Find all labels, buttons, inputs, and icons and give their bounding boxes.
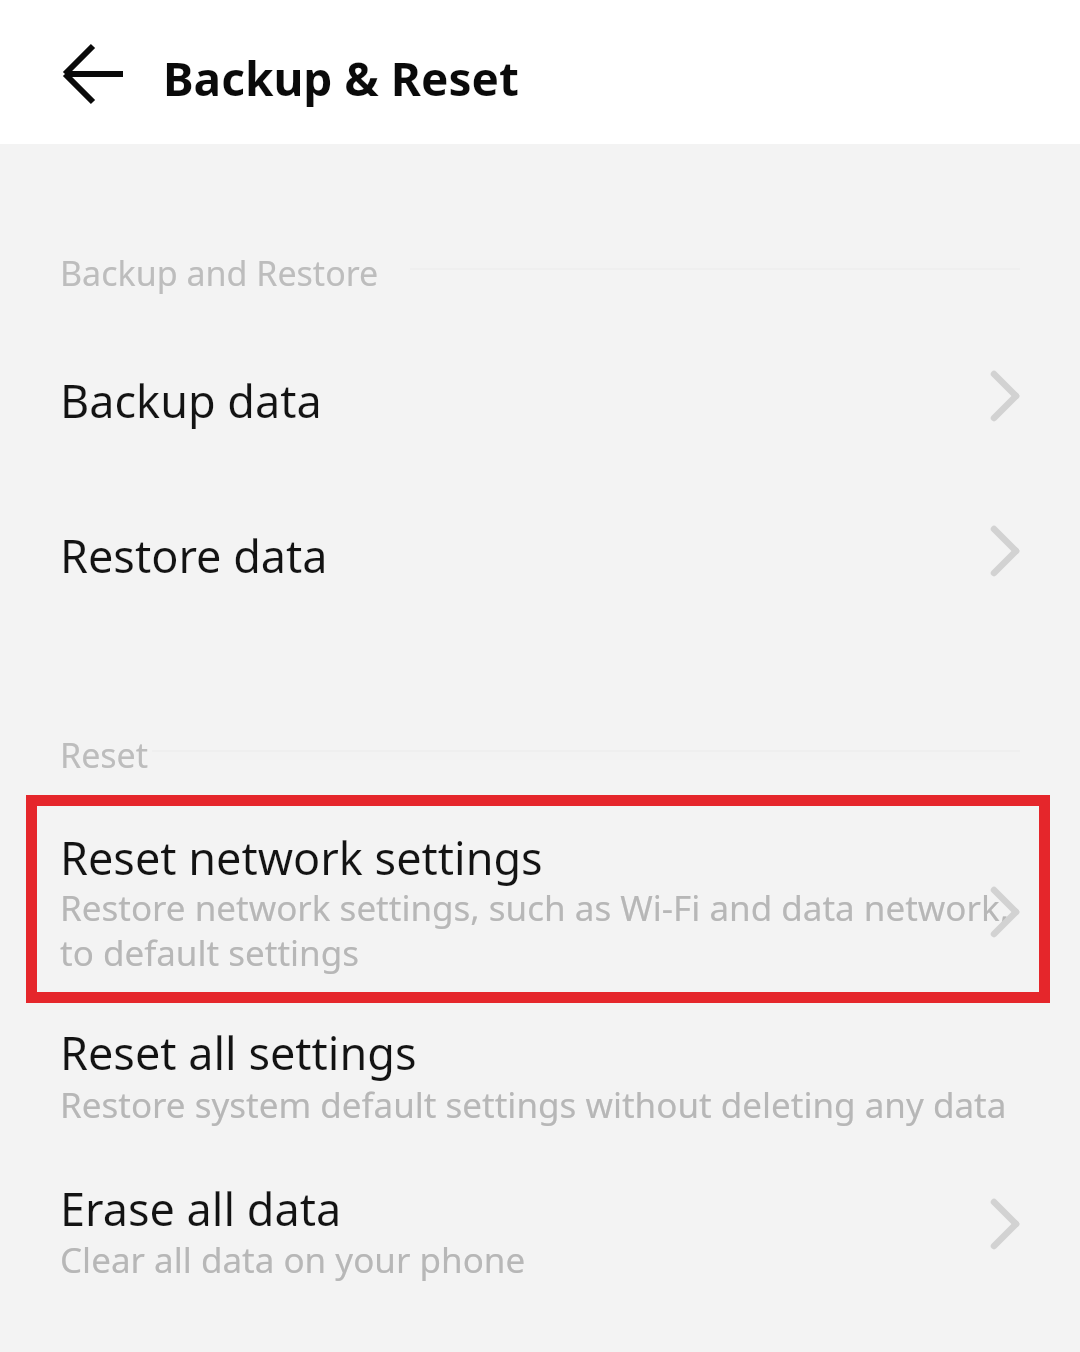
staticText: Reset network settings [60, 827, 543, 888]
staticText: Clear all data on your phone [60, 1236, 1010, 1284]
button[interactable]: Back [40, 30, 150, 118]
staticText: Erase all data [60, 1178, 342, 1239]
staticText: Backup and Restore [60, 250, 379, 296]
button[interactable] [0, 348, 1080, 1352]
staticText: Restore data [60, 525, 328, 586]
button[interactable] [0, 503, 1080, 1352]
button[interactable] [0, 1006, 1080, 1352]
staticText: Backup & Reset [163, 47, 519, 110]
button[interactable] [0, 1160, 1080, 1352]
staticText: Backup data [60, 370, 322, 431]
staticText: Reset all settings [60, 1022, 417, 1083]
staticText: Restore system default settings without … [60, 1081, 1010, 1129]
staticText: Restore network settings, such as Wi-Fi … [60, 884, 1010, 976]
staticText: Reset [60, 732, 149, 778]
button[interactable] [0, 800, 1080, 1352]
